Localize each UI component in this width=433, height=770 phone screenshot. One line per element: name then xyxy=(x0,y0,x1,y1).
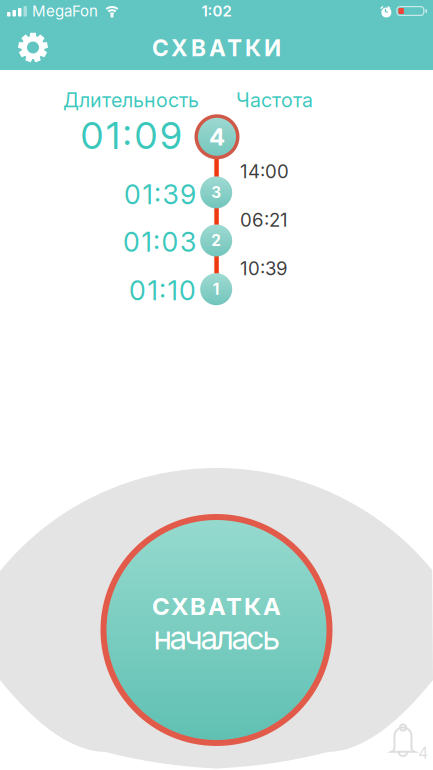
staticText: СХВАТКА xyxy=(152,592,281,621)
staticText: 1 xyxy=(213,280,220,298)
staticText: 1:02 xyxy=(201,2,231,20)
staticText: 06:21 xyxy=(240,209,288,231)
staticText: СХВАТКИ xyxy=(152,34,281,62)
button[interactable]: Настройки xyxy=(17,31,49,63)
staticText: началась xyxy=(153,618,279,657)
staticText: MegaFon xyxy=(32,2,98,20)
staticText: Длительность xyxy=(63,88,199,112)
staticText: 01:09 xyxy=(81,113,182,158)
staticText: 14:00 xyxy=(240,160,289,183)
staticText: 2 xyxy=(211,231,221,250)
staticText: 4 xyxy=(209,122,225,151)
staticText: 01:10 xyxy=(129,274,196,307)
staticText: Частота xyxy=(236,88,313,112)
staticText: 01:39 xyxy=(124,178,196,211)
staticText: 3 xyxy=(211,183,221,202)
button[interactable]: СХВАТКА xyxy=(100,514,332,746)
staticText: 01:03 xyxy=(123,226,196,258)
button[interactable]: Напоминания xyxy=(375,723,433,765)
staticText: 4 xyxy=(418,743,428,763)
staticText: 10:39 xyxy=(240,257,288,280)
